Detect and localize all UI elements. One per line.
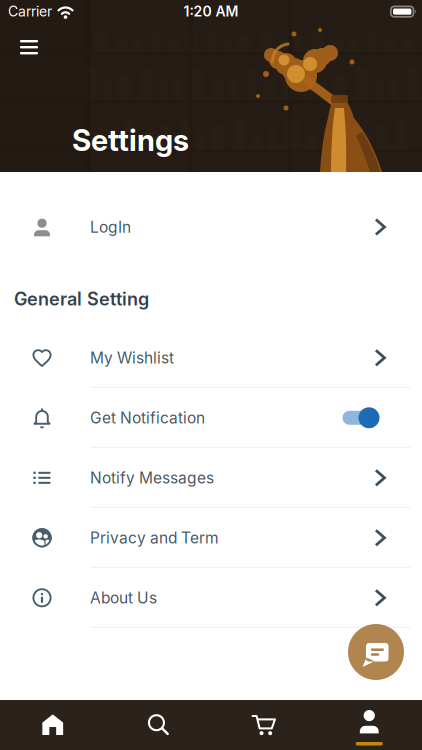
- button[interactable]: Menu: [0, 22, 38, 54]
- button[interactable]: Home: [0, 700, 105, 750]
- staticText: Carrier: [8, 3, 52, 20]
- staticText: 1:20 AM: [183, 3, 238, 20]
- button[interactable]: Search: [105, 700, 211, 750]
- staticText: Get Notification: [90, 408, 205, 427]
- staticText: Privacy and Term: [90, 528, 219, 547]
- button[interactable]: Profile: [316, 700, 422, 750]
- staticText: LogIn: [90, 218, 131, 236]
- button[interactable]: Get Notification: [0, 388, 422, 448]
- staticText: About Us: [90, 588, 157, 607]
- staticText: My Wishlist: [90, 348, 174, 367]
- button[interactable]: Privacy and Term: [0, 508, 422, 568]
- button[interactable]: My Wishlist: [0, 328, 422, 388]
- button[interactable]: Notify Messages: [0, 448, 422, 508]
- staticText: Settings: [72, 122, 189, 158]
- button[interactable]: LogIn: [0, 197, 422, 257]
- staticText: Notify Messages: [90, 468, 214, 487]
- button[interactable]: Cart: [211, 700, 316, 750]
- button[interactable]: About Us: [0, 568, 422, 628]
- button[interactable]: Chat support: [348, 624, 404, 680]
- staticText: General Setting: [14, 288, 149, 310]
